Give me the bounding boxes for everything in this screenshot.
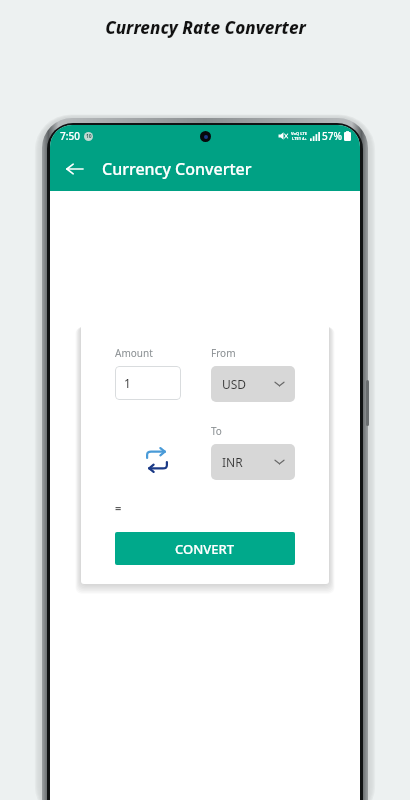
staticText: INR xyxy=(222,454,243,470)
button[interactable]: 1 xyxy=(115,366,181,400)
staticText: 57% xyxy=(322,129,342,143)
staticText: Currency Converter xyxy=(102,158,252,180)
staticText: To xyxy=(211,424,222,438)
button[interactable]: USD xyxy=(211,366,295,402)
staticText: VoQ LTE xyxy=(291,131,307,136)
staticText: 7:50 xyxy=(60,129,80,143)
staticText: Currency Rate Converter xyxy=(105,16,306,39)
button[interactable]: Back xyxy=(56,150,94,188)
button[interactable]: Swap currencies xyxy=(137,440,177,480)
staticText: From xyxy=(211,346,236,360)
staticText: Amount xyxy=(115,346,153,360)
staticText: USD xyxy=(222,376,247,392)
staticText: LTE1 4+ xyxy=(292,136,307,141)
staticText: 10 xyxy=(86,133,92,140)
button[interactable]: CONVERT xyxy=(115,532,295,565)
staticText: CONVERT xyxy=(175,540,235,558)
button[interactable]: INR xyxy=(211,444,295,480)
staticText: 1 xyxy=(124,375,131,391)
staticText: = xyxy=(115,500,122,515)
